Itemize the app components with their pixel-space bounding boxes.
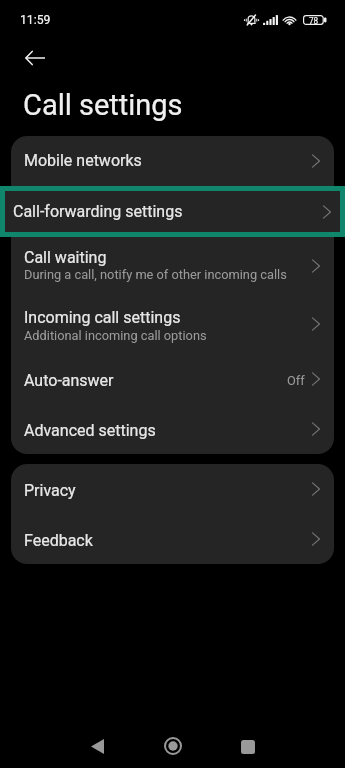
staticText: 78 [309,16,319,26]
staticText: During a call, notify me of other incomi… [24,267,287,282]
staticText: Mobile networks [24,151,142,170]
button[interactable]: Mobile networks [11,136,334,186]
staticText: Privacy [24,481,76,500]
staticText: Incoming call settings [24,308,181,327]
button[interactable]: Incoming call settings [11,294,334,354]
staticText: Additional incoming call options [24,328,207,343]
button[interactable]: Feedback [11,514,334,564]
staticText: 11:59 [20,13,51,27]
button[interactable]: Recent apps [224,723,271,768]
button[interactable]: Call waiting [11,237,334,294]
staticText: Call-forwarding settings [13,202,183,221]
button[interactable]: Back [14,37,56,79]
button[interactable]: Privacy [11,464,334,514]
staticText: Feedback [24,531,93,550]
button[interactable]: Auto-answer [11,354,334,404]
button[interactable]: Home [149,722,196,768]
staticText: Off [287,373,305,388]
staticText: Auto-answer [24,371,114,390]
staticText: Call waiting [24,248,107,267]
staticText: Call settings [23,88,183,122]
staticText: Advanced settings [24,421,156,440]
button[interactable]: Advanced settings [11,404,334,454]
button[interactable]: Call-forwarding settings [0,186,345,237]
button[interactable]: Back [74,723,121,768]
